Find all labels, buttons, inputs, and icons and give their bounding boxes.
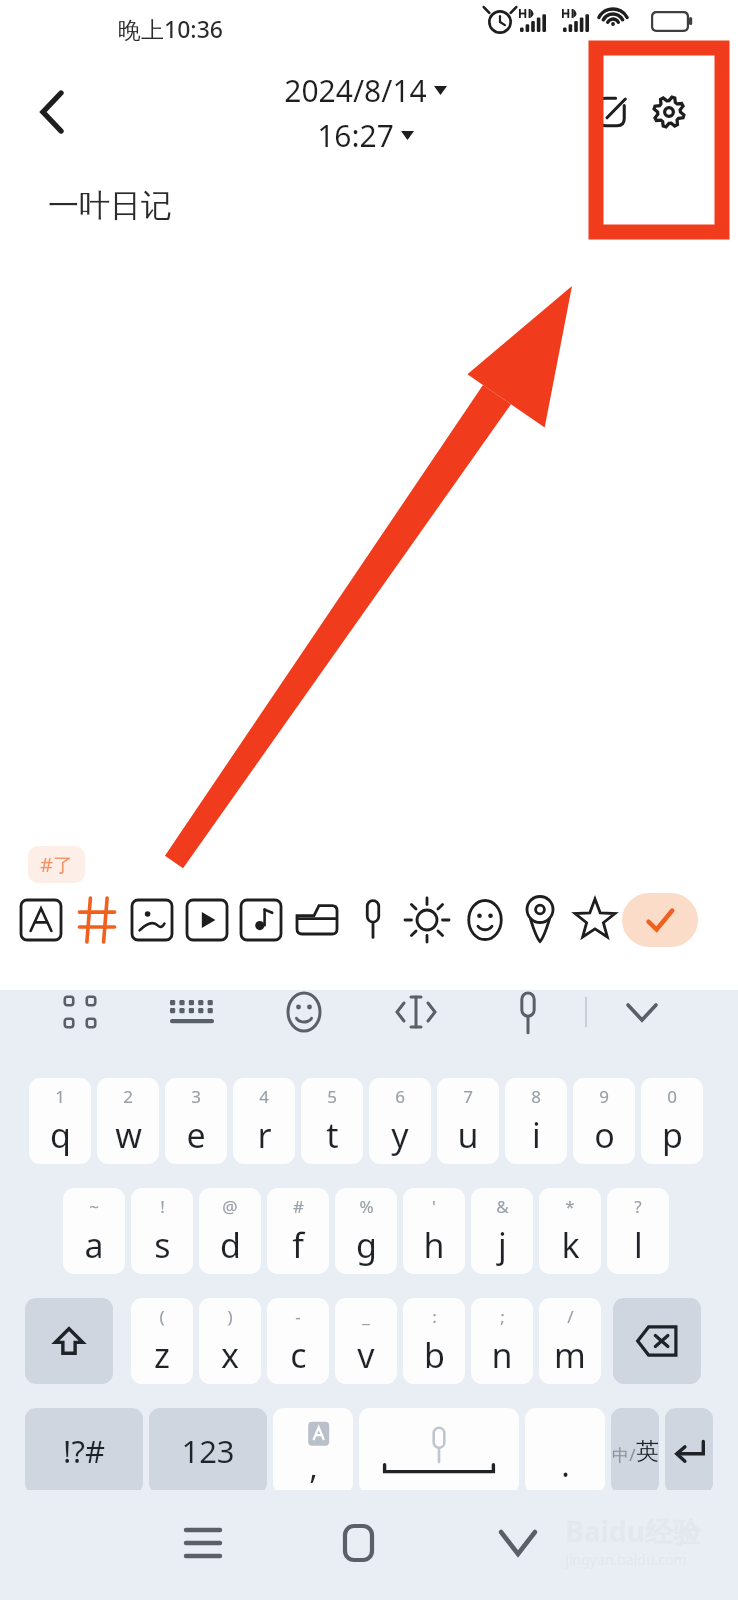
button[interactable]: ~ bbox=[63, 1188, 125, 1274]
button[interactable]: 4 bbox=[233, 1078, 295, 1164]
button[interactable]: 图片 bbox=[126, 894, 178, 946]
staticText: ) bbox=[227, 1305, 233, 1328]
button[interactable]: Shift bbox=[25, 1298, 113, 1384]
button[interactable]: 5 bbox=[301, 1078, 363, 1164]
button[interactable]: ! bbox=[131, 1188, 193, 1274]
staticText: ; bbox=[500, 1305, 505, 1328]
button[interactable]: 编辑 bbox=[584, 84, 640, 140]
staticText: r bbox=[257, 1112, 272, 1158]
staticText: 8 bbox=[531, 1085, 541, 1108]
staticText: ~ bbox=[89, 1195, 99, 1218]
button[interactable]: % bbox=[335, 1188, 397, 1274]
button[interactable]: 2024/8/14 bbox=[255, 70, 475, 156]
staticText: f bbox=[292, 1222, 304, 1268]
button[interactable]: 录音 bbox=[347, 894, 399, 946]
button[interactable]: 9 bbox=[573, 1078, 635, 1164]
staticText: : bbox=[432, 1305, 437, 1328]
button[interactable]: 符号 bbox=[25, 1408, 143, 1494]
staticText: #了 bbox=[40, 851, 73, 878]
staticText: 0 bbox=[667, 1085, 677, 1108]
button[interactable]: 键盘布局 bbox=[162, 990, 222, 1036]
button[interactable]: 6 bbox=[369, 1078, 431, 1164]
button[interactable]: 删除 bbox=[613, 1298, 701, 1384]
button[interactable]: 表情 bbox=[459, 894, 511, 946]
button[interactable]: _ bbox=[335, 1298, 397, 1384]
staticText: 16:27 bbox=[317, 115, 394, 156]
staticText: 3 bbox=[191, 1085, 201, 1108]
button[interactable]: 位置 bbox=[514, 894, 566, 946]
button[interactable]: 设置 bbox=[641, 84, 697, 140]
button[interactable]: 中英切换 bbox=[611, 1408, 659, 1494]
button[interactable]: - bbox=[267, 1298, 329, 1384]
button[interactable]: 完成 bbox=[622, 893, 698, 947]
button[interactable]: 返回 bbox=[22, 82, 82, 142]
staticText: b bbox=[424, 1332, 445, 1378]
button[interactable]: 3 bbox=[165, 1078, 227, 1164]
button[interactable]: & bbox=[471, 1188, 533, 1274]
button[interactable]: 句号 bbox=[525, 1408, 605, 1494]
button[interactable]: 文件 bbox=[291, 894, 343, 946]
staticText: 2 bbox=[123, 1085, 133, 1108]
button[interactable]: ) bbox=[199, 1298, 261, 1384]
staticText: j bbox=[498, 1222, 507, 1268]
staticText: x bbox=[221, 1332, 239, 1378]
staticText: 5 bbox=[327, 1085, 337, 1108]
staticText: i bbox=[532, 1112, 541, 1158]
button[interactable]: ; bbox=[471, 1298, 533, 1384]
staticText: w bbox=[115, 1112, 142, 1158]
staticText: 2024/8/14 bbox=[284, 70, 427, 111]
button[interactable]: ? bbox=[607, 1188, 669, 1274]
button[interactable]: 标签 bbox=[71, 894, 123, 946]
button[interactable]: 返回 bbox=[483, 1508, 553, 1578]
button[interactable]: 视频 bbox=[181, 894, 233, 946]
staticText: g bbox=[356, 1222, 377, 1268]
staticText: @ bbox=[222, 1195, 238, 1218]
button[interactable]: 回车 bbox=[665, 1408, 713, 1494]
staticText: t bbox=[326, 1112, 339, 1158]
button[interactable]: * bbox=[539, 1188, 601, 1274]
button[interactable]: 逗号 bbox=[273, 1408, 353, 1494]
button[interactable]: 主屏幕 bbox=[323, 1508, 393, 1578]
staticText: & bbox=[496, 1195, 509, 1218]
staticText: u bbox=[457, 1112, 479, 1158]
button[interactable]: # bbox=[267, 1188, 329, 1274]
button[interactable]: 面板 bbox=[50, 990, 110, 1036]
button[interactable]: 2 bbox=[97, 1078, 159, 1164]
staticText: ! bbox=[160, 1195, 165, 1218]
button[interactable]: 0 bbox=[641, 1078, 703, 1164]
button[interactable]: 表情 bbox=[274, 990, 334, 1036]
button[interactable]: ( bbox=[131, 1298, 193, 1384]
button[interactable]: 编辑光标 bbox=[386, 990, 446, 1036]
staticText: e bbox=[186, 1112, 206, 1158]
button[interactable]: 数字 bbox=[149, 1408, 267, 1494]
staticText: s bbox=[154, 1222, 171, 1268]
button[interactable]: 空格 bbox=[359, 1408, 519, 1494]
staticText: _ bbox=[362, 1305, 370, 1328]
button[interactable]: ' bbox=[403, 1188, 465, 1274]
staticText: 英 bbox=[636, 1437, 659, 1466]
button[interactable]: 1 bbox=[29, 1078, 91, 1164]
button[interactable]: 音乐 bbox=[235, 894, 287, 946]
button[interactable]: 收起键盘 bbox=[612, 990, 672, 1036]
button[interactable]: 7 bbox=[437, 1078, 499, 1164]
staticText: # bbox=[293, 1195, 304, 1218]
button[interactable]: 天气 bbox=[401, 894, 453, 946]
staticText: !?# bbox=[63, 1430, 105, 1472]
button[interactable]: 语音输入 bbox=[498, 990, 558, 1036]
staticText: a bbox=[84, 1222, 104, 1268]
button[interactable]: / bbox=[539, 1298, 601, 1384]
button[interactable]: 最近任务 bbox=[168, 1508, 238, 1578]
staticText: 中 bbox=[612, 1445, 629, 1466]
button[interactable]: @ bbox=[199, 1188, 261, 1274]
button[interactable]: 8 bbox=[505, 1078, 567, 1164]
staticText: ( bbox=[159, 1305, 165, 1328]
staticText: 晚上10:36 bbox=[118, 13, 223, 44]
staticText: - bbox=[295, 1305, 301, 1328]
staticText: y bbox=[391, 1112, 409, 1158]
staticText: 4 bbox=[259, 1085, 269, 1108]
button[interactable]: : bbox=[403, 1298, 465, 1384]
button[interactable]: 文字样式 bbox=[15, 894, 67, 946]
staticText: * bbox=[565, 1195, 575, 1218]
button[interactable]: #了 bbox=[28, 846, 85, 883]
button[interactable]: 收藏 bbox=[569, 894, 621, 946]
